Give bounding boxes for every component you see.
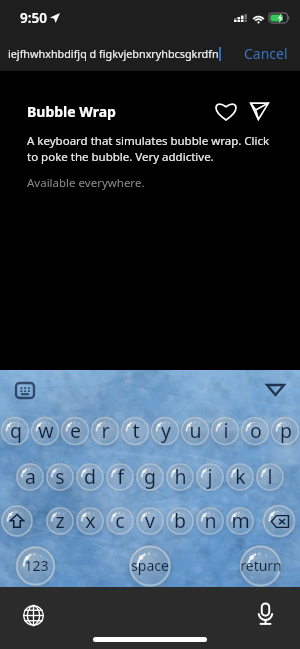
staticText: Cancel [244, 44, 288, 63]
button[interactable]: j [196, 462, 224, 490]
button[interactable]: h [166, 462, 194, 490]
staticText: space [131, 556, 169, 575]
staticText: d [84, 463, 96, 490]
button[interactable]: o [241, 416, 270, 445]
staticText: m [231, 507, 250, 534]
staticText: p [280, 417, 292, 444]
button[interactable]: f [106, 462, 134, 490]
staticText: iejfhwhxhbdifjq d figkvjebnxryhbcsgkrdfn [8, 46, 219, 61]
staticText: o [250, 417, 262, 444]
staticText: n [204, 507, 217, 534]
button[interactable]: Like [214, 99, 238, 123]
staticText: w [38, 417, 54, 444]
button[interactable]: s [46, 462, 74, 490]
button[interactable]: Dictation [254, 603, 276, 625]
button[interactable]: e [61, 416, 90, 445]
staticText: k [235, 463, 246, 490]
button[interactable]: g [136, 462, 164, 490]
button[interactable]: k [226, 462, 254, 490]
button[interactable]: d [76, 462, 104, 490]
button[interactable]: r [91, 416, 120, 445]
staticText: z [55, 507, 65, 534]
staticText: b [174, 507, 186, 534]
button[interactable]: w [31, 416, 60, 445]
button[interactable]: Share [247, 99, 271, 123]
button[interactable]: a [16, 462, 44, 490]
button[interactable]: y [151, 416, 180, 445]
staticText: t [132, 417, 140, 444]
button[interactable]: t [121, 416, 150, 445]
button[interactable]: m [226, 506, 254, 534]
staticText: s [55, 463, 65, 490]
button[interactable]: Backspace [263, 505, 296, 538]
staticText: h [174, 463, 187, 490]
button[interactable]: i [211, 416, 240, 445]
button[interactable]: Cancel [242, 40, 290, 67]
button[interactable]: z [46, 506, 74, 534]
staticText: 9:50 [20, 9, 47, 27]
button[interactable]: 123 [16, 545, 56, 585]
button[interactable]: return [240, 544, 282, 586]
button[interactable]: n [196, 506, 224, 534]
staticText: x [85, 507, 96, 534]
button[interactable]: b [166, 506, 194, 534]
staticText: e [70, 417, 81, 444]
staticText: q [10, 417, 22, 444]
staticText: j [207, 463, 213, 490]
button[interactable]: v [136, 506, 164, 534]
staticText: Available everywhere. [27, 175, 145, 191]
button[interactable]: x [76, 506, 104, 534]
staticText: g [144, 463, 156, 490]
staticText: return [240, 556, 282, 575]
staticText: i [223, 417, 229, 444]
staticText: c [115, 507, 125, 534]
button[interactable]: Change language [23, 605, 44, 626]
button[interactable]: Keyboard settings [14, 379, 36, 401]
staticText: a [25, 463, 36, 490]
button[interactable]: c [106, 506, 134, 534]
staticText: v [145, 507, 155, 534]
button[interactable]: Shift [1, 505, 33, 537]
staticText: r [101, 417, 110, 444]
button[interactable]: Hide keyboard [264, 379, 286, 401]
button[interactable]: u [181, 416, 210, 445]
staticText: 123 [24, 556, 49, 575]
staticText: Bubble Wrap [27, 102, 116, 121]
staticText: y [161, 417, 171, 444]
staticText: l [267, 463, 273, 490]
staticText: A keyboard that simulates bubble wrap. C… [27, 133, 271, 164]
staticText: u [189, 417, 202, 444]
button[interactable]: space [129, 544, 171, 586]
button[interactable]: p [271, 416, 300, 445]
button[interactable]: l [256, 462, 284, 490]
staticText: f [117, 463, 124, 490]
button[interactable]: q [1, 416, 30, 445]
